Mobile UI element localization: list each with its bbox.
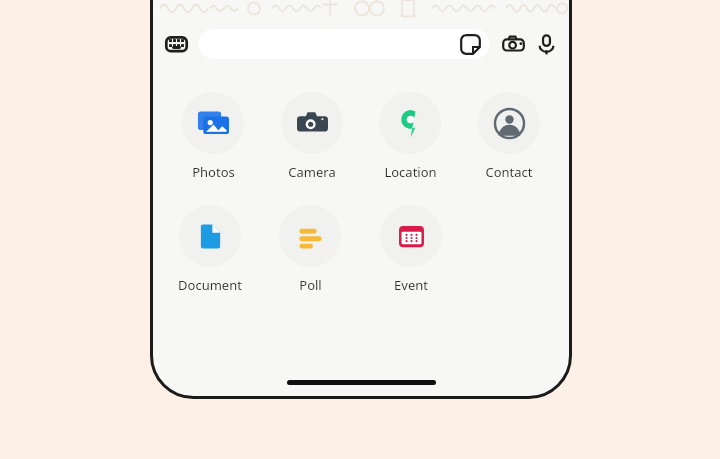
button[interactable]: Keyboard [159, 27, 193, 61]
staticText: Document [178, 276, 242, 294]
staticText: Camera [288, 163, 336, 181]
button[interactable]: Poll [265, 204, 355, 295]
button[interactable]: Sticker [459, 33, 482, 56]
button[interactable]: Event [366, 204, 456, 295]
staticText: Event [394, 276, 428, 294]
button[interactable]: Photos [168, 91, 258, 182]
staticText: Poll [299, 276, 322, 294]
button[interactable]: Location [365, 91, 455, 182]
staticText: Contact [485, 163, 533, 181]
button[interactable]: Sticker [198, 29, 490, 59]
button[interactable]: Document [165, 204, 255, 295]
button[interactable]: Camera [497, 28, 530, 61]
button[interactable]: Contact [464, 91, 554, 182]
button[interactable]: Voice message [530, 28, 563, 61]
button[interactable]: Camera [267, 91, 357, 182]
staticText: Location [384, 163, 437, 181]
staticText: Photos [192, 163, 235, 181]
